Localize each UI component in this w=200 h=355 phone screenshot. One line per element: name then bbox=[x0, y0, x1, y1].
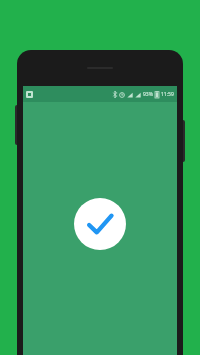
staticText: 93% bbox=[143, 91, 153, 98]
other: Notification bbox=[26, 91, 33, 98]
button[interactable]: Notification bbox=[17, 50, 183, 355]
button[interactable]: Success bbox=[74, 198, 126, 250]
staticText: 11:59 bbox=[161, 91, 174, 98]
